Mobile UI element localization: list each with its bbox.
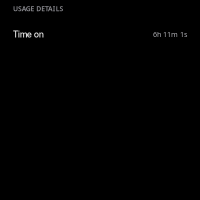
- staticText: Time on: [13, 29, 44, 39]
- button[interactable]: Time on: [0, 26, 200, 42]
- staticText: USAGE DETAILS: [13, 4, 64, 13]
- staticText: 6h 11m 1s: [153, 29, 187, 39]
